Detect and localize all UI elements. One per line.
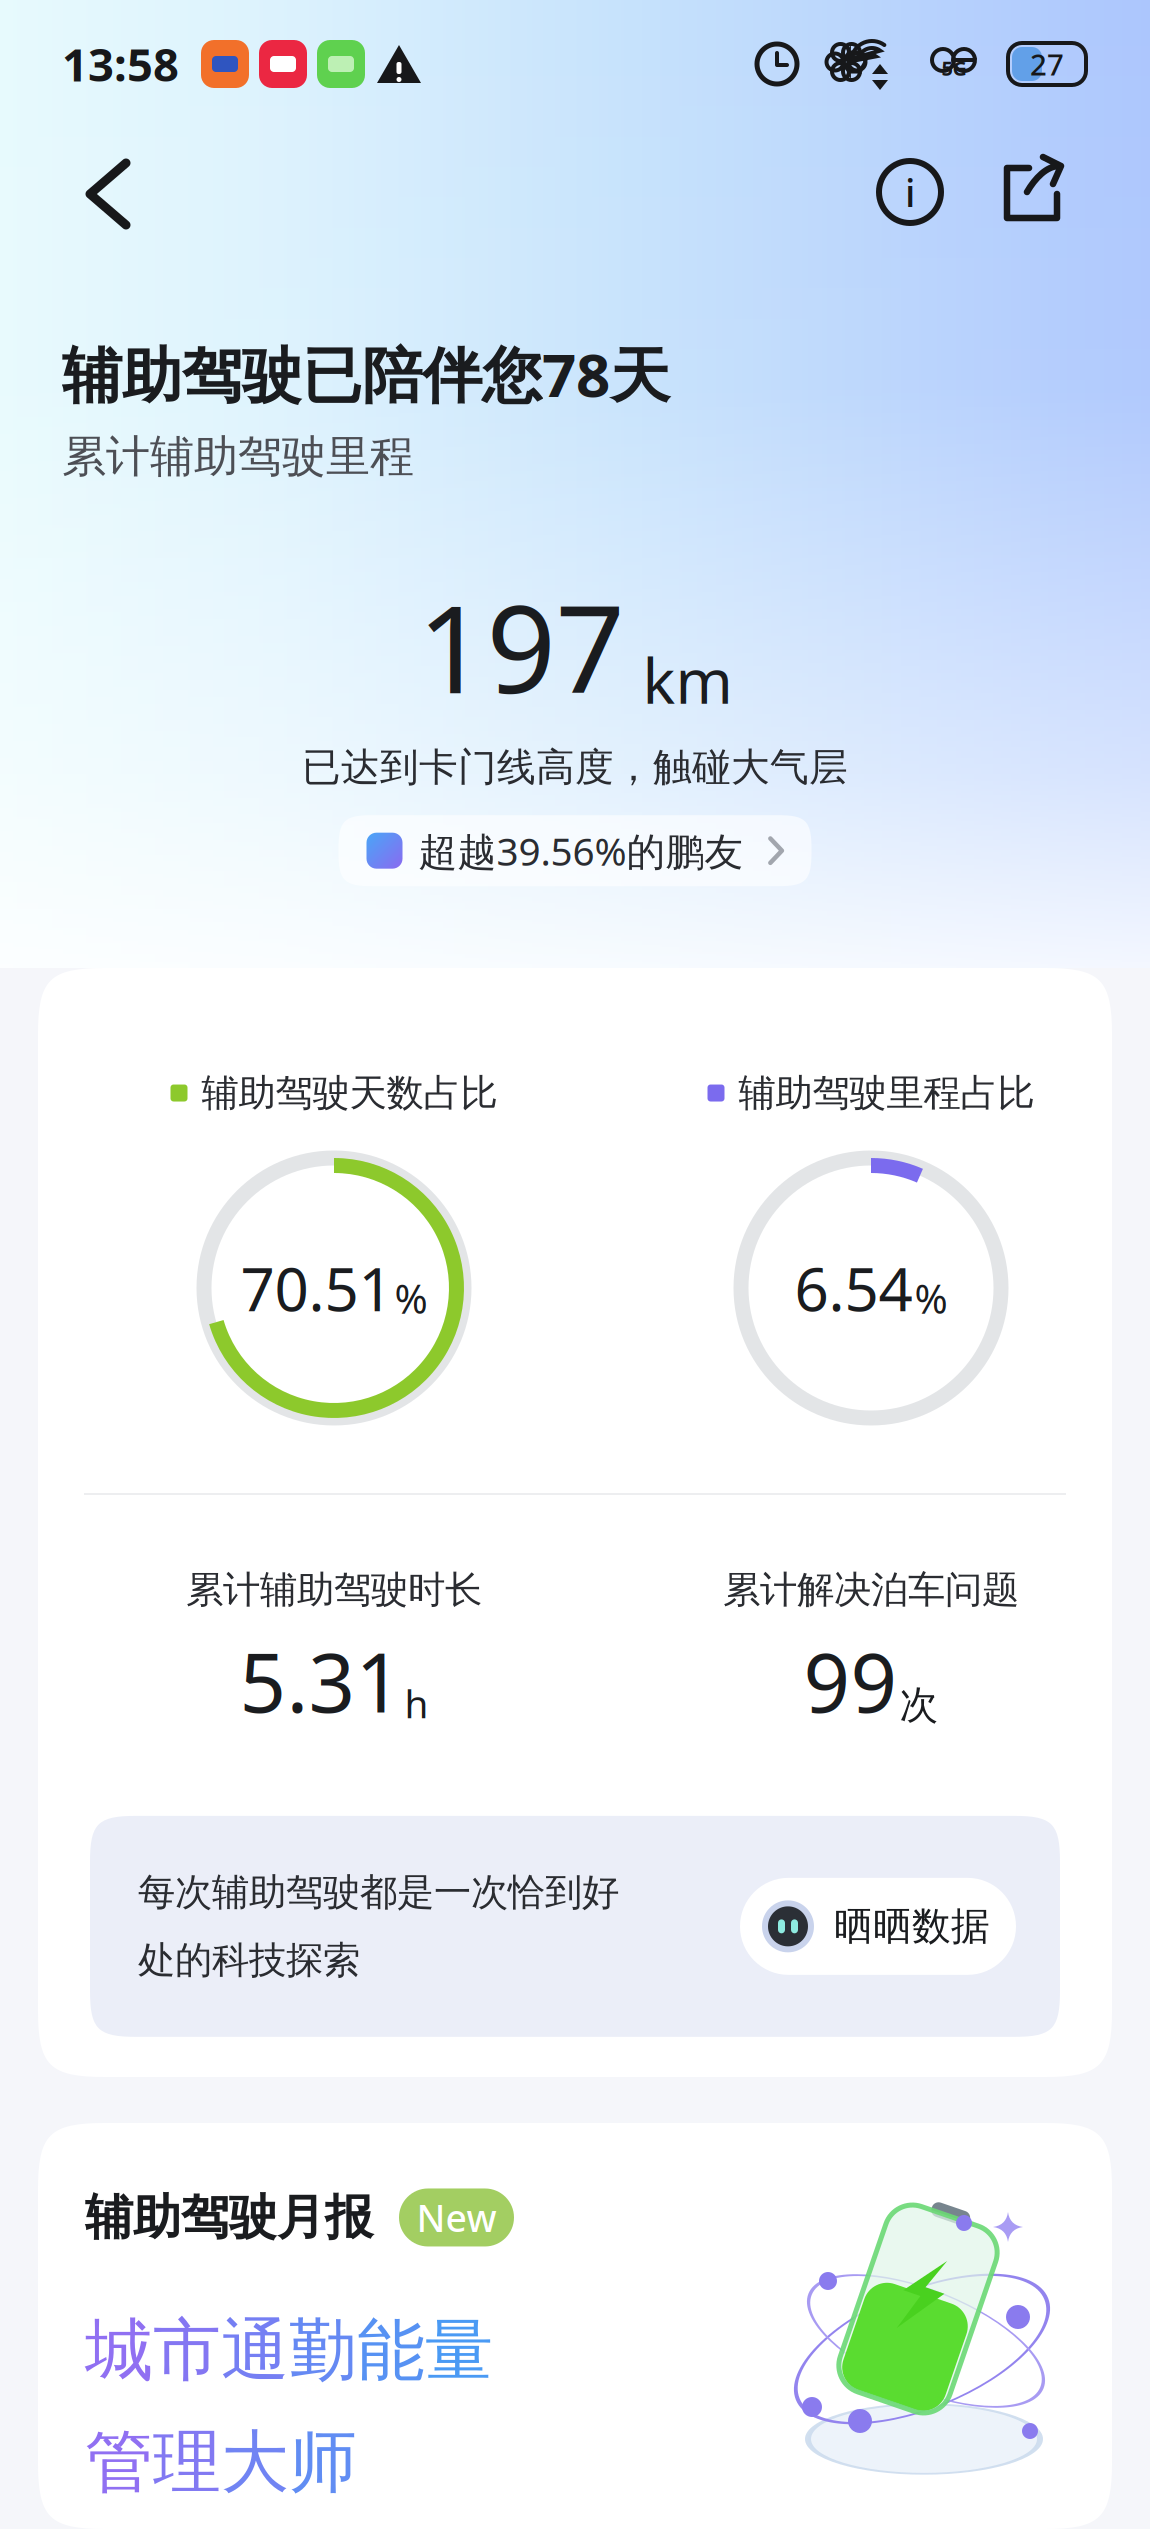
staticText: % xyxy=(394,1272,427,1325)
staticText: 超越39.56%的鹏友 xyxy=(418,825,743,876)
staticText: i xyxy=(905,166,915,218)
staticText: 能 xyxy=(357,2309,425,2392)
staticText: 5G xyxy=(941,55,966,81)
staticText: 勤 xyxy=(289,2309,357,2392)
button[interactable]: Share xyxy=(983,142,1091,250)
staticText: 累计辅助驾驶时长 xyxy=(186,1567,482,1613)
button[interactable]: Information xyxy=(856,138,964,246)
staticText: 每次辅助驾驶都是一次恰到好 xyxy=(138,1869,619,1915)
staticText: 5.31 xyxy=(239,1627,402,1735)
staticText: 城 xyxy=(85,2309,153,2392)
staticText: 管 xyxy=(85,2420,153,2504)
staticText: 量 xyxy=(425,2309,493,2392)
staticText: % xyxy=(914,1272,947,1325)
staticText: 市 xyxy=(153,2309,221,2392)
staticText: 197 xyxy=(417,566,624,727)
staticText: 已达到卡门线高度，触碰大气层 xyxy=(302,744,848,791)
staticText: 13:58 xyxy=(62,34,179,94)
staticText: 辅助驾驶月报 xyxy=(85,2188,373,2247)
staticText: 辅助驾驶已陪伴您78天 xyxy=(62,334,670,414)
staticText: 晒晒数据 xyxy=(834,1903,990,1950)
staticText: 累计解决泊车问题 xyxy=(723,1567,1019,1613)
staticText: 99 xyxy=(803,1627,897,1735)
staticText: 处的科技探索 xyxy=(138,1937,360,1983)
staticText: New xyxy=(416,2193,496,2242)
staticText: h xyxy=(404,1677,428,1729)
staticText: 27 xyxy=(1030,44,1064,83)
staticText: 大 xyxy=(221,2420,289,2504)
staticText: 70.51 xyxy=(240,1248,392,1328)
staticText: 师 xyxy=(289,2420,357,2504)
staticText: km xyxy=(642,639,732,721)
button[interactable]: Back xyxy=(54,137,166,251)
staticText: 通 xyxy=(221,2309,289,2392)
staticText: 辅助驾驶里程占比 xyxy=(738,1070,1034,1116)
staticText: 辅助驾驶天数占比 xyxy=(201,1070,497,1116)
button[interactable]: 晒晒数据 xyxy=(740,1878,1016,1975)
button[interactable]: 超越39.56%的鹏友 xyxy=(338,815,811,886)
staticText: 6.54 xyxy=(794,1248,912,1328)
staticText: 次 xyxy=(899,1681,938,1729)
staticText: 累计辅助驾驶里程 xyxy=(62,430,414,484)
staticText: 理 xyxy=(153,2420,221,2504)
button[interactable]: 辅助驾驶月报 xyxy=(38,2123,1112,2529)
